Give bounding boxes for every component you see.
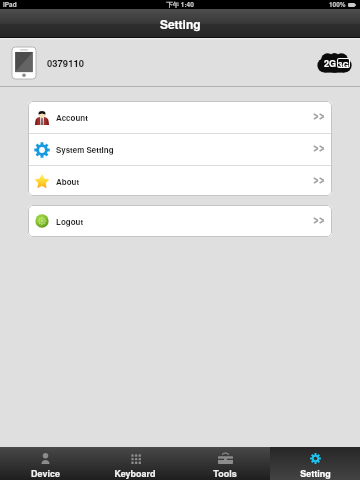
- staticText: Device: [31, 467, 60, 480]
- staticText: About: [56, 176, 80, 187]
- button[interactable]: Tools: [180, 447, 270, 480]
- button[interactable]: Logout: [28, 205, 332, 237]
- staticText: Keyboard: [114, 467, 156, 480]
- staticText: Logout: [56, 216, 84, 227]
- button[interactable]: About: [28, 166, 332, 196]
- button[interactable]: Account: [28, 101, 332, 133]
- button[interactable]: System Setting: [28, 134, 332, 165]
- staticText: 100%: [329, 0, 346, 9]
- staticText: Setting: [300, 467, 331, 480]
- staticText: Tools: [213, 467, 237, 480]
- staticText: Account: [56, 112, 88, 123]
- button[interactable]: Keyboard: [90, 447, 180, 480]
- staticText: Setting: [160, 15, 201, 32]
- staticText: 3G: [338, 59, 349, 67]
- staticText: 0379110: [47, 56, 84, 70]
- staticText: 下午 1:40: [166, 0, 194, 9]
- button[interactable]: Setting: [270, 447, 360, 480]
- staticText: System Setting: [56, 144, 114, 155]
- button[interactable]: Device: [0, 447, 90, 480]
- staticText: 2G: [324, 57, 337, 70]
- staticText: iPad: [3, 0, 17, 9]
